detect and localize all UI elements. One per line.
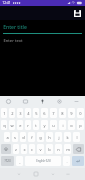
staticText: p [79,123,82,128]
button[interactable]: s [12,132,18,142]
button[interactable]: y [41,120,48,130]
staticText: 7 [52,111,55,116]
button[interactable]: mic [34,96,51,107]
button[interactable]: v [37,144,44,154]
button[interactable]: 1 [1,108,7,118]
button[interactable]: 9 [68,108,75,118]
staticText: 0 [79,111,82,116]
button[interactable]: e [17,120,23,130]
button[interactable]: x [21,144,27,154]
staticText: w [10,123,14,128]
staticText: e [19,123,22,128]
button[interactable]: 2 [9,108,15,118]
button[interactable]: t [33,120,39,130]
staticText: v [39,147,42,152]
button[interactable]: 8 [59,108,66,118]
staticText: , [19,159,21,164]
button[interactable]: h [46,132,53,142]
button[interactable]: English (US) [25,156,61,166]
button[interactable]: w [9,120,15,130]
staticText: d [22,135,25,140]
staticText: 4 [27,111,30,116]
staticText: 3 [19,111,22,116]
staticText: 5 [35,111,38,116]
button[interactable]: emoji [0,96,17,107]
button[interactable]: ?123 [1,156,14,166]
button[interactable]: d [20,132,26,142]
staticText: k [66,135,69,140]
button[interactable]: 3 [17,108,23,118]
staticText: s [14,135,16,140]
button[interactable]: a [4,132,10,142]
button[interactable]: , [16,156,23,166]
staticText: u [52,123,55,128]
staticText: l [76,135,78,140]
staticText: m [66,147,70,152]
staticText: n [57,147,60,152]
button[interactable]: gif [17,96,34,107]
button[interactable]: g [37,132,44,142]
button[interactable]: Save [73,9,82,18]
staticText: g [39,135,42,140]
staticText: r [27,123,29,128]
staticText: English (US) [36,159,51,163]
button[interactable]: l [73,132,80,142]
button[interactable]: r [25,120,31,130]
staticText: y [43,123,46,128]
staticText: 9 [70,111,73,116]
button[interactable]: o [68,120,75,130]
staticText: q [3,123,6,128]
button[interactable] [1,144,11,154]
button[interactable]: Enter text [3,38,82,44]
button[interactable]: Enter title [3,24,82,34]
button[interactable]: b [46,144,53,154]
staticText: Enter text [3,38,23,44]
button[interactable]: n [55,144,62,154]
button[interactable]: m [64,144,71,154]
staticText: i [62,123,64,128]
staticText: 2 [11,111,14,116]
button[interactable]: f [28,132,35,142]
staticText: a [6,135,9,140]
staticText: z [15,147,17,152]
button[interactable]: z [13,144,19,154]
button[interactable]: j [55,132,62,142]
staticText: . [66,159,68,164]
staticText: 6 [43,111,46,116]
button[interactable]: i [59,120,66,130]
button[interactable]: k [64,132,71,142]
button[interactable] [73,144,84,154]
button[interactable]: p [77,120,84,130]
button[interactable]: q [1,120,7,130]
staticText: b [48,147,51,152]
staticText: f [31,135,33,140]
button[interactable]: 4 [25,108,31,118]
staticText: h [48,135,51,140]
staticText: 1 [3,111,6,116]
button[interactable]: c [29,144,35,154]
staticText: Enter title [3,24,27,31]
staticText: ?123 [4,159,11,163]
staticText: x [23,147,26,152]
staticText: 12:41 [2,1,11,5]
button[interactable]: 0 [77,108,84,118]
staticText: t [35,123,37,128]
button[interactable]: 6 [41,108,48,118]
staticText: 8 [61,111,64,116]
staticText: j [58,135,60,140]
button[interactable]: u [50,120,57,130]
button[interactable]: Home [27,168,44,180]
staticText: o [70,123,73,128]
staticText: c [31,147,33,152]
button[interactable]: 5 [33,108,39,118]
button[interactable]: more [68,96,85,107]
button[interactable]: settings [51,96,68,107]
button[interactable]: 7 [50,108,57,118]
button[interactable] [72,156,84,166]
